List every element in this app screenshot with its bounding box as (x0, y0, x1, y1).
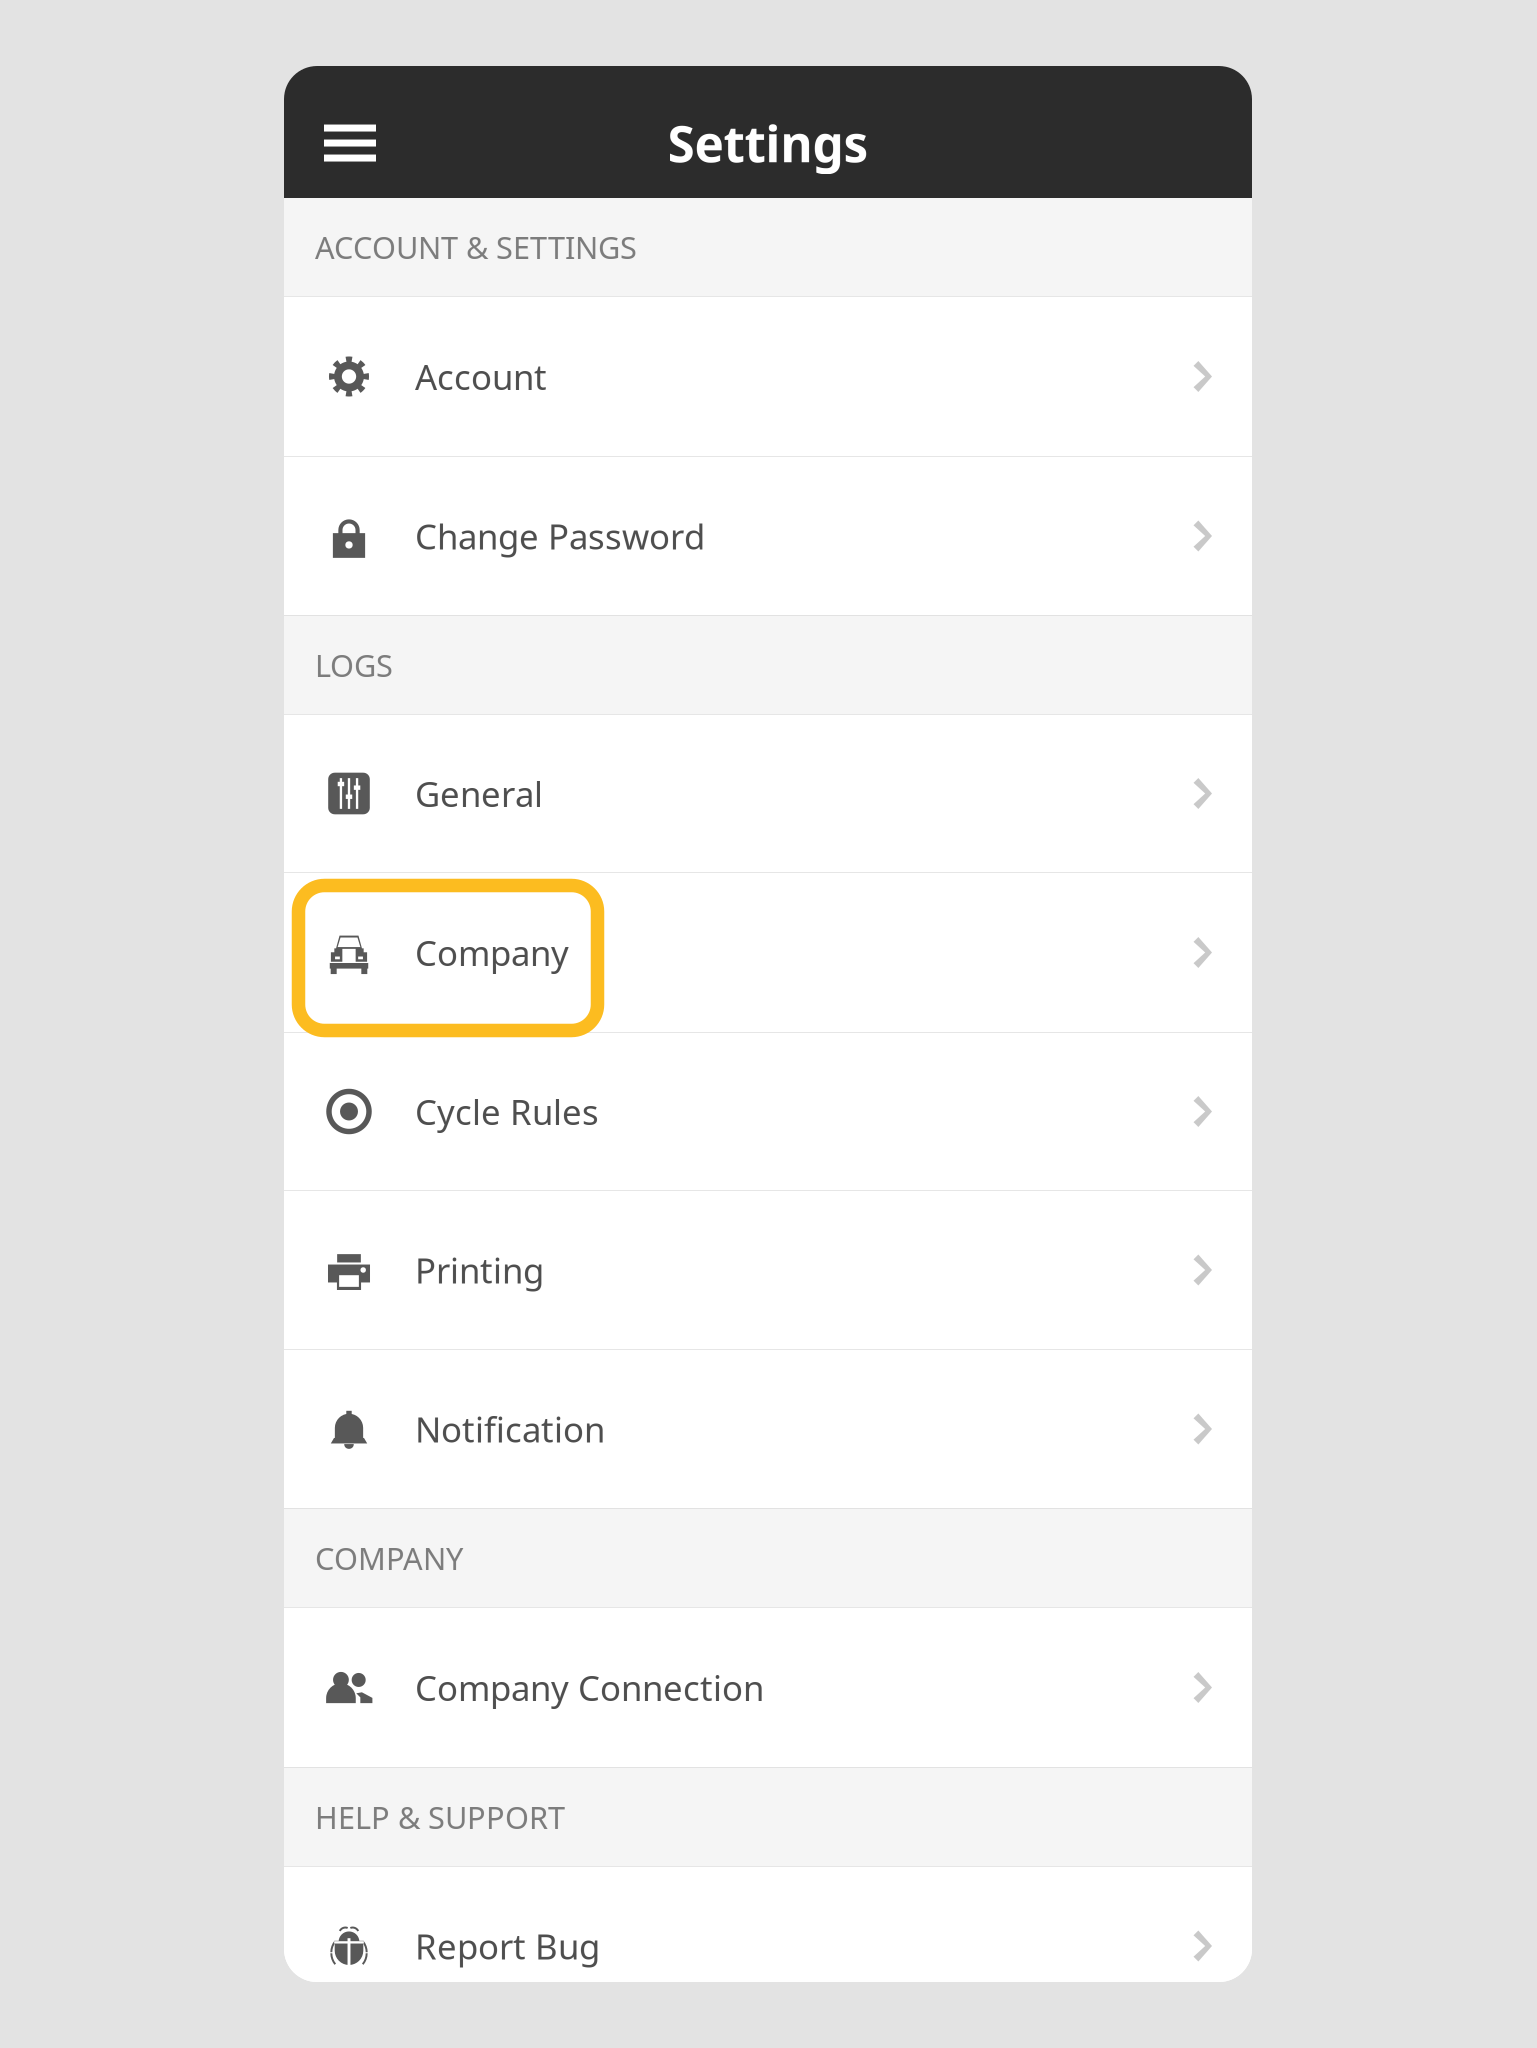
button[interactable]: Cycle Rules (284, 1032, 1252, 1190)
staticText: Notification (415, 1406, 605, 1452)
button[interactable]: Company Connection (284, 1607, 1252, 1767)
staticText: Settings (667, 110, 868, 176)
staticText: Company Connection (415, 1664, 764, 1710)
button[interactable]: Account (284, 296, 1252, 456)
button[interactable]: Printing (284, 1190, 1252, 1349)
staticText: COMPANY (315, 1538, 463, 1578)
staticText: Company (415, 929, 569, 975)
staticText: Printing (415, 1247, 544, 1293)
staticText: Account (415, 353, 547, 399)
button[interactable]: Company (284, 872, 1252, 1032)
staticText: General (415, 770, 543, 816)
button[interactable]: General (284, 714, 1252, 872)
button[interactable]: Menu (304, 112, 396, 174)
staticText: LOGS (315, 645, 393, 685)
button[interactable]: Change Password (284, 456, 1252, 615)
staticText: Change Password (415, 513, 705, 559)
staticText: ACCOUNT & SETTINGS (315, 227, 637, 267)
staticText: Report Bug (415, 1923, 600, 1969)
staticText: Cycle Rules (415, 1088, 599, 1134)
button[interactable]: Notification (284, 1349, 1252, 1508)
button[interactable]: Report Bug (284, 1866, 1252, 2025)
staticText: HELP & SUPPORT (315, 1797, 565, 1837)
